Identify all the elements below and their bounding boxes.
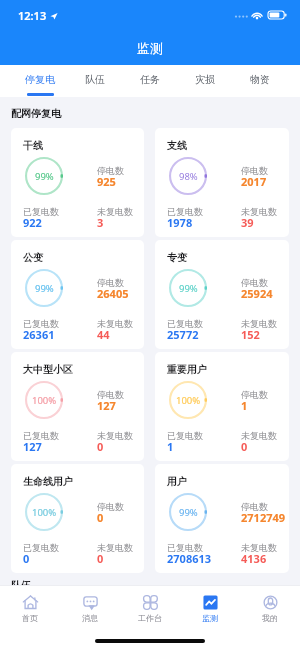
staticText: 未复电数 — [97, 318, 133, 329]
staticText: 99% — [35, 282, 54, 295]
staticText: 已复电数 — [23, 542, 59, 553]
staticText: 2712749 — [241, 510, 286, 525]
staticText: 0 — [241, 439, 248, 454]
staticText: 25924 — [241, 286, 273, 301]
staticText: 未复电数 — [241, 542, 277, 553]
staticText: 停电数 — [97, 389, 124, 400]
staticText: 2017 — [241, 174, 267, 189]
staticText: 未复电数 — [97, 430, 133, 441]
staticText: 停电数 — [97, 165, 124, 176]
staticText: 1978 — [167, 215, 193, 230]
staticText: 1 — [241, 398, 248, 413]
staticText: 26405 — [97, 286, 129, 301]
staticText: 公变 — [23, 251, 43, 264]
staticText: 停电数 — [241, 277, 268, 288]
staticText: 停电数 — [241, 165, 268, 176]
staticText: 98% — [179, 170, 198, 183]
staticText: 26361 — [23, 327, 55, 342]
staticText: 未复电数 — [241, 206, 277, 217]
staticText: 已复电数 — [167, 430, 203, 441]
staticText: 我的 — [262, 613, 278, 623]
staticText: 灾损 — [195, 73, 215, 86]
staticText: 监测 — [202, 613, 218, 623]
staticText: 12:13 — [18, 8, 47, 23]
staticText: 用户 — [167, 475, 187, 488]
staticText: 0 — [97, 510, 104, 525]
button[interactable]: 停复电 — [13, 65, 67, 97]
staticText: 停电数 — [241, 501, 268, 512]
staticText: 925 — [97, 174, 116, 189]
button[interactable]: 工作台 — [120, 586, 180, 631]
staticText: 已复电数 — [23, 430, 59, 441]
staticText: 停电数 — [97, 501, 124, 512]
staticText: 已复电数 — [23, 318, 59, 329]
button[interactable]: 支线 — [155, 128, 289, 237]
staticText: 44 — [97, 327, 110, 342]
staticText: 已复电数 — [167, 318, 203, 329]
staticText: 已复电数 — [23, 206, 59, 217]
staticText: 首页 — [22, 613, 38, 623]
staticText: 922 — [23, 215, 42, 230]
button[interactable]: 灾损 — [177, 65, 232, 97]
staticText: 停电数 — [241, 389, 268, 400]
staticText: 39 — [241, 215, 254, 230]
staticText: 0 — [97, 439, 104, 454]
staticText: 99% — [179, 506, 198, 519]
staticText: 100% — [32, 506, 57, 519]
staticText: 队伍 — [11, 579, 31, 585]
button[interactable]: 生命线用户 — [11, 464, 144, 573]
button[interactable]: 重要用户 — [155, 352, 289, 461]
staticText: 重要用户 — [167, 363, 207, 376]
button[interactable]: 监测 — [180, 586, 240, 631]
staticText: 未复电数 — [97, 206, 133, 217]
staticText: 停复电 — [25, 73, 55, 86]
staticText: 监测 — [137, 40, 163, 56]
staticText: 100% — [32, 394, 57, 407]
button[interactable]: 首页 — [0, 586, 60, 631]
staticText: 未复电数 — [241, 430, 277, 441]
staticText: 0 — [97, 551, 104, 566]
staticText: 99% — [179, 282, 198, 295]
button[interactable]: 任务 — [122, 65, 177, 97]
staticText: 干线 — [23, 139, 43, 152]
staticText: 物资 — [250, 73, 270, 86]
staticText: 已复电数 — [167, 206, 203, 217]
staticText: 停电数 — [97, 277, 124, 288]
staticText: 0 — [23, 551, 30, 566]
button[interactable]: 消息 — [60, 586, 120, 631]
staticText: 支线 — [167, 139, 187, 152]
button[interactable]: 队伍 — [67, 65, 122, 97]
staticText: 任务 — [140, 73, 160, 86]
staticText: 生命线用户 — [23, 475, 73, 488]
staticText: 消息 — [82, 613, 98, 623]
button[interactable]: 我的 — [240, 586, 300, 631]
button[interactable]: 物资 — [232, 65, 287, 97]
staticText: 队伍 — [85, 73, 105, 86]
staticText: 127 — [97, 398, 116, 413]
staticText: 4136 — [241, 551, 267, 566]
staticText: 工作台 — [138, 613, 162, 623]
button[interactable]: 公变 — [11, 240, 144, 349]
staticText: 152 — [241, 327, 260, 342]
staticText: 3 — [97, 215, 104, 230]
staticText: 专变 — [167, 251, 187, 264]
button[interactable]: 干线 — [11, 128, 144, 237]
staticText: 1 — [167, 439, 174, 454]
staticText: 100% — [176, 394, 201, 407]
staticText: 2708613 — [167, 551, 212, 566]
staticText: 已复电数 — [167, 542, 203, 553]
staticText: 99% — [35, 170, 54, 183]
staticText: 未复电数 — [97, 542, 133, 553]
staticText: 127 — [23, 439, 42, 454]
staticText: 25772 — [167, 327, 199, 342]
button[interactable]: 专变 — [155, 240, 289, 349]
button[interactable]: 用户 — [155, 464, 289, 573]
staticText: 大中型小区 — [23, 363, 73, 376]
button[interactable]: 大中型小区 — [11, 352, 144, 461]
staticText: 配网停复电 — [11, 107, 61, 120]
staticText: 未复电数 — [241, 318, 277, 329]
